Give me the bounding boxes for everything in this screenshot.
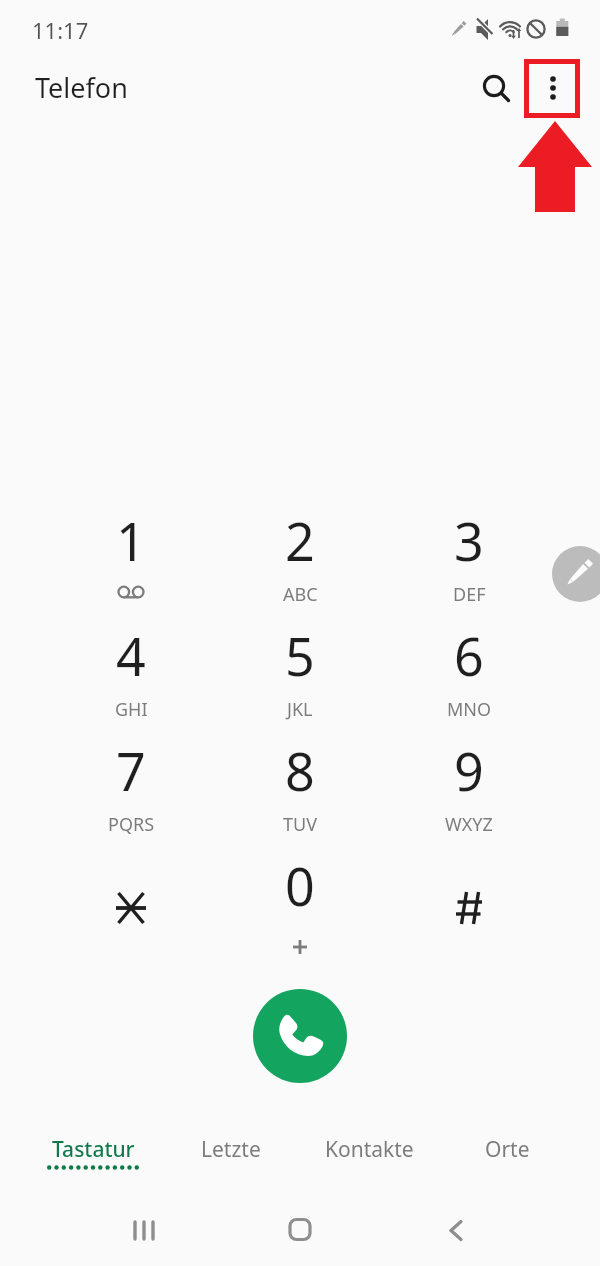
button[interactable]: Home (260, 1192, 340, 1266)
button[interactable]: 2 (216, 495, 384, 609)
button[interactable]: Tastatur (24, 1122, 162, 1180)
staticText: 4 (116, 620, 146, 691)
staticText: Tastatur (52, 1135, 135, 1164)
button[interactable]: Back (416, 1192, 496, 1266)
button[interactable]: 9 (385, 725, 553, 839)
staticText: ABC (283, 582, 318, 607)
button[interactable]: 3 (385, 495, 553, 609)
staticText: WXYZ (445, 812, 493, 837)
button[interactable]: Edit (552, 546, 600, 602)
staticText: 7 (116, 735, 146, 806)
staticText: MNO (447, 697, 492, 722)
staticText: 2 (285, 505, 315, 576)
button[interactable]: 7 (47, 725, 215, 839)
staticText: 3 (454, 505, 484, 576)
button[interactable]: 6 (385, 610, 553, 724)
staticText: 5 (285, 620, 315, 691)
button[interactable]: 1 (47, 495, 215, 609)
button[interactable]: Kontakte (300, 1122, 438, 1180)
button[interactable]: 8 (216, 725, 384, 839)
staticText: 8 (285, 735, 315, 806)
staticText: Orte (485, 1135, 530, 1164)
staticText: JKL (287, 697, 313, 722)
button[interactable]: Orte (438, 1122, 576, 1180)
staticText: Kontakte (325, 1135, 414, 1164)
staticText: 11:17 (32, 15, 89, 45)
button[interactable]: 0 (216, 840, 384, 954)
button[interactable]: More options (528, 65, 576, 113)
staticText: DEF (453, 582, 486, 607)
staticText: GHI (115, 697, 148, 722)
button[interactable] (385, 840, 553, 954)
button[interactable]: Call (253, 989, 347, 1083)
staticText: 9 (454, 735, 484, 806)
button[interactable]: 5 (216, 610, 384, 724)
staticText: 1 (116, 505, 146, 576)
staticText: Letzte (201, 1135, 261, 1164)
staticText: 0 (285, 850, 315, 921)
button[interactable]: 4 (47, 610, 215, 724)
staticText: Telefon (35, 69, 128, 106)
button[interactable]: Recent apps (104, 1192, 184, 1266)
button[interactable] (47, 840, 215, 954)
staticText: TUV (283, 812, 317, 837)
button[interactable]: Letzte (162, 1122, 300, 1180)
button[interactable]: Search (475, 65, 525, 115)
staticText: 6 (454, 620, 484, 691)
staticText: PQRS (108, 812, 155, 837)
